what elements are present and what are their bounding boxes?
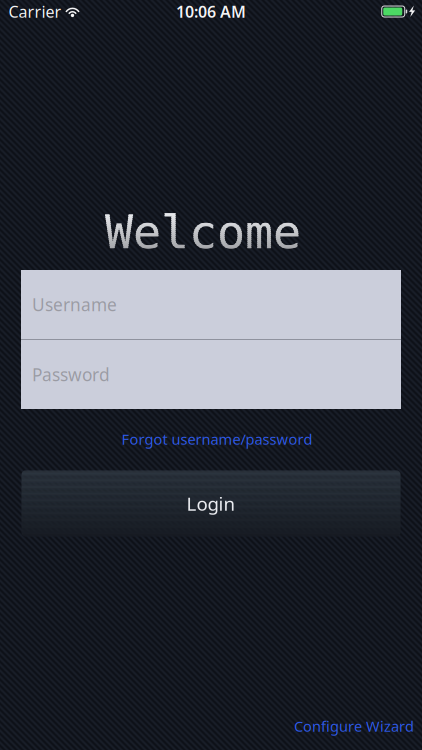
staticText: Welcome (105, 205, 301, 258)
staticText: Welcome (105, 205, 301, 258)
staticText: Forgot username/password (121, 429, 312, 449)
staticText: Welcome (105, 205, 301, 258)
staticText: Welcome (105, 205, 301, 258)
button[interactable]: Login (21, 470, 400, 536)
button[interactable]: Username (21, 270, 401, 339)
staticText: Welcome (105, 205, 301, 258)
staticText: Welcome (105, 205, 301, 258)
staticText: Configure Wizard (294, 716, 414, 736)
staticText: Welcome (105, 205, 301, 258)
staticText: Welcome (105, 205, 301, 258)
staticText: Welcome (105, 205, 301, 258)
button[interactable]: Forgot username/password (97, 426, 337, 452)
staticText: 10:06 AM (176, 1, 246, 22)
staticText: Welcome (105, 205, 301, 258)
button[interactable]: Password (21, 340, 401, 409)
staticText: Welcome (105, 205, 301, 258)
staticText: Login (186, 491, 235, 516)
staticText: Welcome (105, 205, 301, 258)
staticText: Welcome (105, 205, 301, 258)
staticText: Password (32, 363, 110, 386)
staticText: Welcome (105, 205, 301, 258)
staticText: Carrier (8, 1, 61, 22)
staticText: Welcome (105, 205, 301, 258)
staticText: Welcome (105, 205, 301, 258)
staticText: Welcome (105, 205, 301, 258)
button[interactable]: Configure Wizard (284, 713, 414, 739)
staticText: Welcome (105, 205, 301, 258)
staticText: Welcome (105, 205, 301, 258)
staticText: Welcome (105, 205, 301, 258)
staticText: Username (32, 293, 117, 316)
staticText: Welcome (105, 205, 301, 258)
staticText: Welcome (105, 205, 301, 258)
staticText: Welcome (105, 205, 301, 258)
staticText: Welcome (105, 205, 301, 258)
